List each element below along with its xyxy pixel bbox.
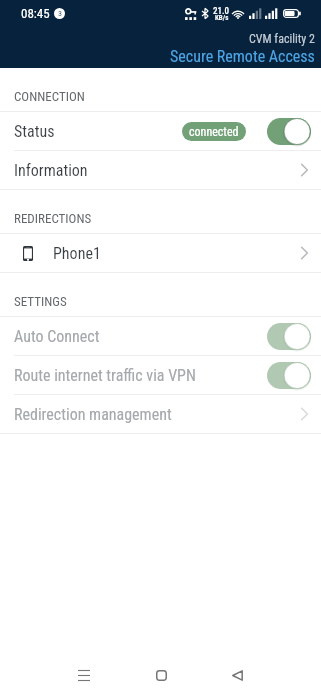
staticText: SETTINGS bbox=[14, 294, 67, 309]
button[interactable]: Phone1 bbox=[0, 234, 321, 272]
staticText: Information bbox=[14, 161, 88, 180]
button[interactable]: Recent apps bbox=[56, 653, 112, 695]
staticText: 3 bbox=[58, 9, 62, 18]
staticText: CVM facility 2 bbox=[249, 32, 315, 46]
staticText: Route internet traffic via VPN bbox=[14, 366, 196, 385]
staticText: Auto Connect bbox=[14, 327, 100, 346]
button[interactable]: Route internet traffic via VPN bbox=[0, 356, 321, 394]
button[interactable]: Status bbox=[0, 112, 321, 150]
staticText: Secure Remote Access bbox=[170, 47, 315, 66]
staticText: 21.0 bbox=[213, 6, 230, 17]
button[interactable]: Information bbox=[0, 151, 321, 189]
staticText: CONNECTION bbox=[14, 89, 85, 104]
button[interactable]: Home bbox=[133, 653, 189, 695]
staticText: Status bbox=[14, 122, 55, 141]
staticText: REDIRECTIONS bbox=[14, 211, 92, 226]
button[interactable]: Back bbox=[209, 653, 265, 695]
button[interactable]: Redirection management bbox=[0, 395, 321, 433]
staticText: Redirection management bbox=[14, 405, 172, 424]
staticText: KB/s bbox=[215, 14, 229, 22]
button[interactable]: Auto Connect bbox=[0, 317, 321, 355]
staticText: Phone1 bbox=[53, 244, 101, 263]
staticText: 08:45 bbox=[21, 6, 50, 21]
staticText: connected bbox=[189, 125, 239, 139]
